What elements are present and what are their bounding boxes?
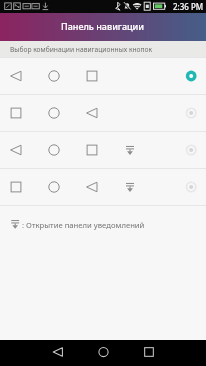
button[interactable]: Navigation layout option 1 <box>0 57 206 94</box>
button[interactable]: Navigation layout option 3 <box>0 131 206 168</box>
staticText: Панель навигации <box>61 20 145 32</box>
button[interactable]: Recent apps <box>127 340 173 366</box>
staticText: : Открытие панели уведомлений <box>22 220 145 230</box>
button[interactable]: Back <box>35 340 81 366</box>
staticText: 2:36 PM <box>173 1 204 12</box>
button[interactable]: Navigation layout option 2 <box>0 94 206 131</box>
staticText: Выбор комбинации навигационных кнопок <box>10 45 153 54</box>
button[interactable]: Home <box>81 340 127 366</box>
button[interactable]: Панель навигации <box>0 13 206 41</box>
button[interactable]: Navigation layout option 4 <box>0 168 206 205</box>
